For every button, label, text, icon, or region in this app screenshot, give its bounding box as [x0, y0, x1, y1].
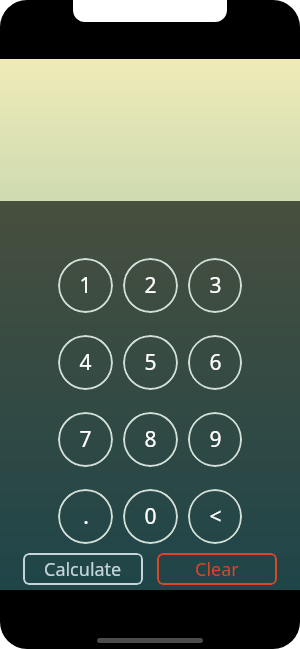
staticText: 1	[79, 271, 92, 300]
staticText: Clear	[195, 557, 239, 582]
staticText: <	[209, 502, 222, 531]
staticText: 3	[209, 271, 222, 300]
button[interactable]: 3	[188, 258, 242, 313]
staticText: 4	[79, 348, 92, 377]
staticText: 7	[79, 425, 92, 454]
button[interactable]: 9	[188, 412, 242, 467]
staticText: 2	[144, 271, 157, 300]
button[interactable]: 2	[123, 258, 178, 313]
button[interactable]: 1	[58, 258, 113, 313]
staticText: 0	[144, 502, 157, 531]
button[interactable]: Clear	[157, 553, 277, 585]
button[interactable]: 6	[188, 335, 242, 390]
button[interactable]: 7	[58, 412, 113, 467]
button[interactable]: 4	[58, 335, 113, 390]
staticText: 8	[144, 425, 157, 454]
button[interactable]: 0	[123, 489, 178, 544]
staticText: .	[83, 502, 89, 531]
staticText: 6	[209, 348, 222, 377]
button[interactable]: <	[188, 489, 242, 544]
button[interactable]: 8	[123, 412, 178, 467]
button[interactable]: Calculate	[23, 553, 143, 585]
staticText: 5	[144, 348, 157, 377]
staticText: Calculate	[44, 557, 122, 582]
staticText: 9	[209, 425, 222, 454]
button[interactable]: .	[58, 489, 113, 544]
button[interactable]: 5	[123, 335, 178, 390]
